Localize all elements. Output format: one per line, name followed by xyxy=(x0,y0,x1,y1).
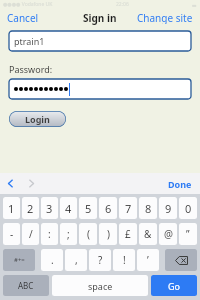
staticText: 1 xyxy=(8,201,15,216)
staticText: ABC xyxy=(18,280,34,291)
staticText: Cancel xyxy=(7,11,39,24)
button[interactable]: ABC xyxy=(3,275,49,296)
staticText: 3 xyxy=(46,201,53,216)
staticText: : xyxy=(48,227,51,241)
staticText: ’ xyxy=(147,253,149,267)
button[interactable]: - xyxy=(3,223,20,245)
button[interactable]: . xyxy=(41,249,63,271)
staticText: 4 xyxy=(65,201,72,216)
button[interactable]: / xyxy=(22,223,39,245)
staticText: Go xyxy=(168,280,180,292)
button[interactable]: space xyxy=(52,275,148,296)
button[interactable]: Previous field xyxy=(0,173,21,194)
staticText: @ xyxy=(164,227,173,241)
staticText: 5 xyxy=(85,201,92,216)
button[interactable]: £ xyxy=(119,223,137,245)
staticText: 9 xyxy=(165,201,172,216)
button[interactable]: ; xyxy=(60,223,77,245)
staticText: space xyxy=(88,280,113,292)
staticText: 2 xyxy=(27,201,34,216)
staticText: 8 xyxy=(145,201,152,216)
staticText: ●●●● Vodafone UK xyxy=(3,1,53,8)
staticText: - xyxy=(10,227,14,241)
button[interactable]: 3 xyxy=(41,197,58,219)
staticText: ” xyxy=(186,227,190,241)
staticText: ? xyxy=(98,253,103,267)
button[interactable]: @ xyxy=(159,223,177,245)
button[interactable]: ” xyxy=(179,223,197,245)
staticText: , xyxy=(75,253,78,267)
staticText: & xyxy=(144,227,152,241)
button[interactable]: Go xyxy=(151,275,197,296)
button[interactable]: ! xyxy=(113,249,135,271)
button[interactable]: & xyxy=(139,223,157,245)
button[interactable]: 1 xyxy=(3,197,20,219)
staticText: Sign in xyxy=(83,11,117,25)
staticText: / xyxy=(29,227,33,241)
button[interactable]: 5 xyxy=(79,197,97,219)
staticText: ptrain1 xyxy=(14,35,45,47)
button[interactable]: Cancel xyxy=(0,9,46,26)
button[interactable]: Login xyxy=(9,111,66,127)
button[interactable]: 4 xyxy=(60,197,77,219)
button[interactable]: ? xyxy=(89,249,111,271)
staticText: Done xyxy=(168,178,192,190)
staticText: ; xyxy=(67,227,70,241)
button[interactable]: 2 xyxy=(22,197,39,219)
button[interactable]: 0 xyxy=(179,197,197,219)
button[interactable]: ) xyxy=(99,223,117,245)
button[interactable]: Done xyxy=(160,175,200,193)
button[interactable]: 7 xyxy=(119,197,137,219)
button[interactable]: Change site xyxy=(130,9,200,26)
button[interactable]: Next field xyxy=(21,173,42,194)
button[interactable]: 8 xyxy=(139,197,157,219)
staticText: Password: xyxy=(9,63,53,75)
staticText: ▬ xyxy=(192,2,197,8)
staticText: £ xyxy=(125,227,131,241)
button[interactable]: , xyxy=(65,249,87,271)
button[interactable]: #+= xyxy=(3,249,35,271)
staticText: ) xyxy=(107,227,110,241)
staticText: 22:06 xyxy=(116,1,129,8)
button[interactable]: ptrain1 xyxy=(9,31,191,51)
button[interactable]: : xyxy=(41,223,58,245)
button[interactable]: ’ xyxy=(137,249,159,271)
staticText: #+= xyxy=(14,256,25,264)
staticText: ! xyxy=(123,253,126,267)
staticText: 7 xyxy=(125,201,132,216)
staticText: Login xyxy=(25,113,50,125)
button[interactable]: 9 xyxy=(159,197,177,219)
staticText: 0 xyxy=(185,201,192,216)
button[interactable] xyxy=(9,79,191,99)
staticText: ( xyxy=(87,227,90,241)
staticText: Change site xyxy=(137,11,193,24)
button[interactable]: Backspace xyxy=(165,249,197,271)
staticText: 6 xyxy=(105,201,112,216)
button[interactable]: 6 xyxy=(99,197,117,219)
staticText: . xyxy=(51,253,54,267)
button[interactable]: ( xyxy=(79,223,97,245)
